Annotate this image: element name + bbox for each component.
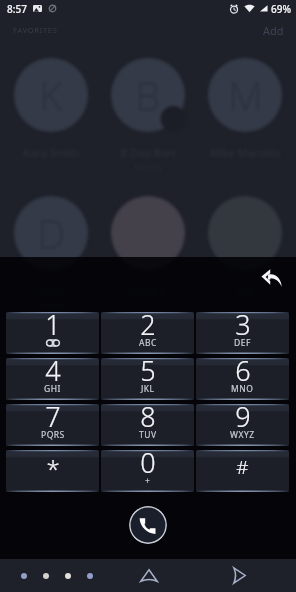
staticText: 7 [45,404,61,435]
staticText: ABC [139,337,157,349]
staticText: WXYZ [230,429,255,441]
staticText: 8:57 [7,2,27,16]
button[interactable]: B P [199,196,291,298]
button[interactable]: M [199,58,291,160]
staticText: MNO [231,383,254,395]
button[interactable]: Call [129,506,167,544]
staticText: 3 [235,312,251,343]
button[interactable]: 5 [101,358,194,400]
staticText: FAVORITES [13,25,58,35]
staticText: 2 [140,312,156,343]
button[interactable]: # [196,450,289,492]
staticText: 1 [45,312,61,343]
button[interactable]: Backspace [253,259,290,296]
staticText: + [145,475,151,487]
button[interactable]: Home [124,559,173,592]
staticText: DEF [234,337,251,349]
staticText: 9 [235,404,251,435]
button[interactable]: 3 [196,312,289,354]
button[interactable]: Add [263,23,284,38]
button[interactable]: Steve C [102,196,194,298]
button[interactable]: K [5,58,97,160]
staticText: 5 [140,358,156,389]
staticText: JKL [141,383,155,395]
button[interactable]: 6 [196,358,289,400]
staticText: 4 [45,358,61,389]
staticText: PQRS [41,429,65,441]
staticText: D [37,206,66,260]
button[interactable]: 1 [6,312,99,354]
button[interactable]: * [6,450,99,492]
button[interactable]: B [102,58,194,173]
staticText: 0 [140,450,156,481]
staticText: 69% [271,2,291,16]
staticText: 6 [235,358,251,389]
button[interactable]: 9 [196,404,289,446]
button[interactable]: 0 [101,450,194,492]
staticText: 8 [140,404,156,435]
button[interactable]: D [5,196,97,311]
staticText: * [46,452,60,485]
button[interactable]: 2 [101,312,194,354]
staticText: TUV [139,429,157,441]
staticText: # [236,454,249,480]
button[interactable]: 7 [6,404,99,446]
button[interactable]: Recent apps [10,559,104,592]
staticText: Add [263,23,284,38]
button[interactable]: 4 [6,358,99,400]
staticText: GHI [44,383,61,395]
button[interactable]: Back [215,559,264,592]
button[interactable]: 8 [101,404,194,446]
